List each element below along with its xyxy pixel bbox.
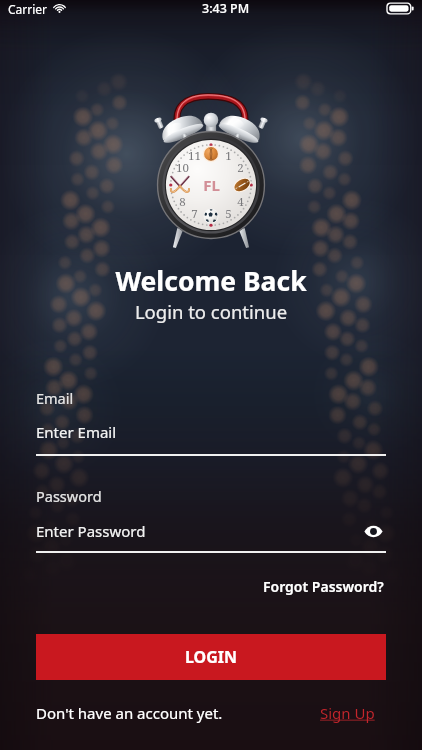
staticText: 4 — [237, 194, 244, 210]
staticText: Enter Email — [36, 422, 117, 442]
staticText: Carrier — [8, 1, 48, 17]
staticText: Enter Password — [36, 521, 360, 541]
staticText: 7 — [191, 206, 198, 222]
staticText: FL — [203, 175, 220, 195]
staticText: 11 — [188, 148, 201, 164]
button[interactable]: Sign Up — [320, 703, 375, 723]
staticText: 3:43 PM — [202, 0, 250, 17]
staticText: 2 — [237, 160, 244, 176]
staticText: 8 — [179, 194, 186, 210]
staticText: 10 — [176, 160, 189, 176]
button[interactable]: Forgot Password? — [261, 575, 386, 598]
staticText: Forgot Password? — [263, 577, 384, 596]
staticText: Don't have an account yet. — [36, 703, 223, 723]
staticText: Email — [36, 388, 74, 408]
staticText: 5 — [225, 206, 232, 222]
staticText: Password — [36, 486, 102, 506]
staticText: Sign Up — [320, 703, 375, 723]
staticText: 1 — [225, 148, 232, 164]
staticText: Login to continue — [0, 299, 422, 324]
staticText: Welcome Back — [0, 263, 422, 299]
staticText: LOGIN — [185, 646, 238, 668]
button[interactable]: Show password — [360, 518, 386, 544]
button[interactable]: LOGIN — [36, 634, 386, 680]
